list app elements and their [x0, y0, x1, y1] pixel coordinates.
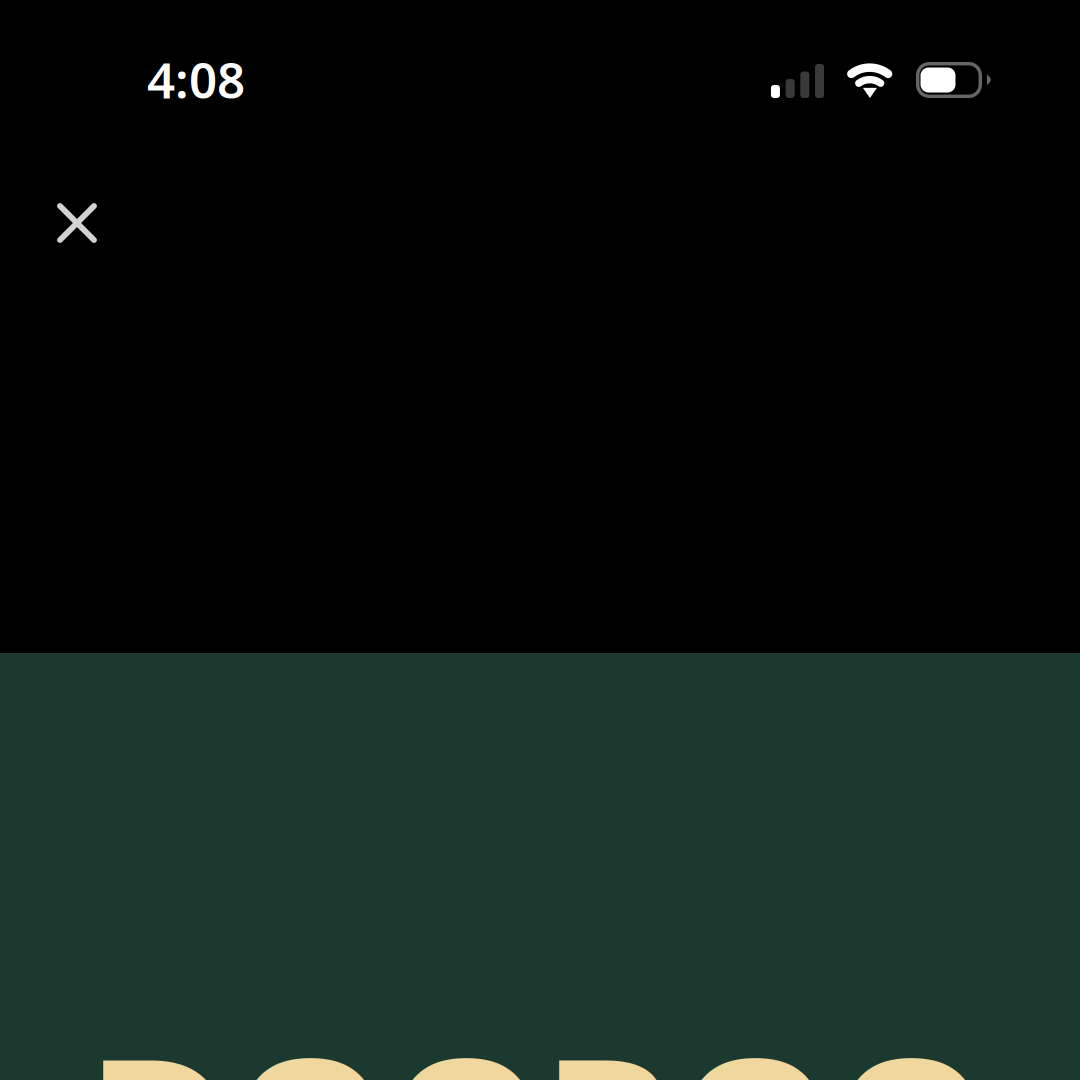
- staticText: 4:08: [147, 46, 245, 112]
- staticText: DOOROO: [88, 994, 989, 1080]
- button[interactable]: Close: [33, 179, 121, 267]
